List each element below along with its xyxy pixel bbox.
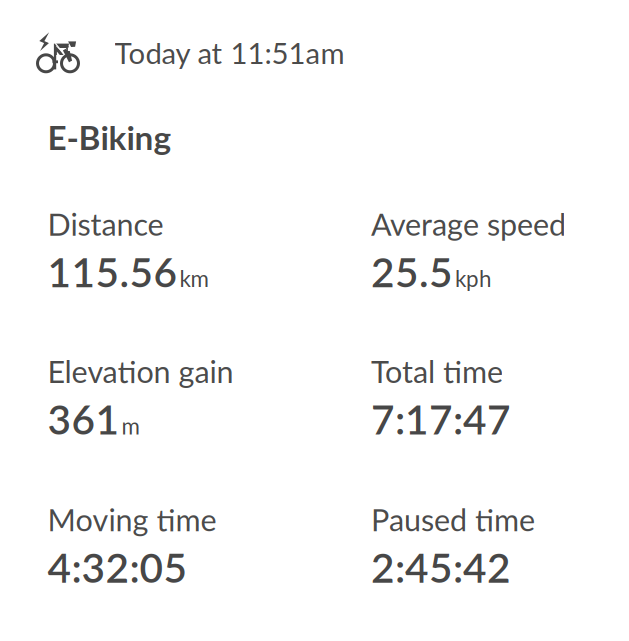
staticText: 361 — [47, 394, 119, 443]
staticText: m — [121, 412, 139, 439]
staticText: Elevation gain — [47, 353, 233, 389]
staticText: 4:32:05 — [47, 543, 187, 591]
staticText: Today at 11:51am — [114, 35, 344, 70]
staticText: 7:17:47 — [371, 394, 511, 443]
staticText: 115.56 — [47, 247, 177, 296]
staticText: E-Biking — [47, 117, 171, 157]
staticText: 25.5 — [371, 247, 453, 296]
staticText: Average speed — [371, 206, 566, 242]
staticText: Moving time — [47, 501, 216, 538]
button[interactable]: Today at 11:51am — [0, 0, 629, 641]
staticText: km — [179, 265, 208, 292]
staticText: 2:45:42 — [371, 543, 511, 591]
staticText: Distance — [47, 206, 163, 242]
staticText: Total time — [371, 353, 503, 389]
staticText: Paused time — [371, 501, 535, 538]
staticText: kph — [455, 265, 491, 292]
